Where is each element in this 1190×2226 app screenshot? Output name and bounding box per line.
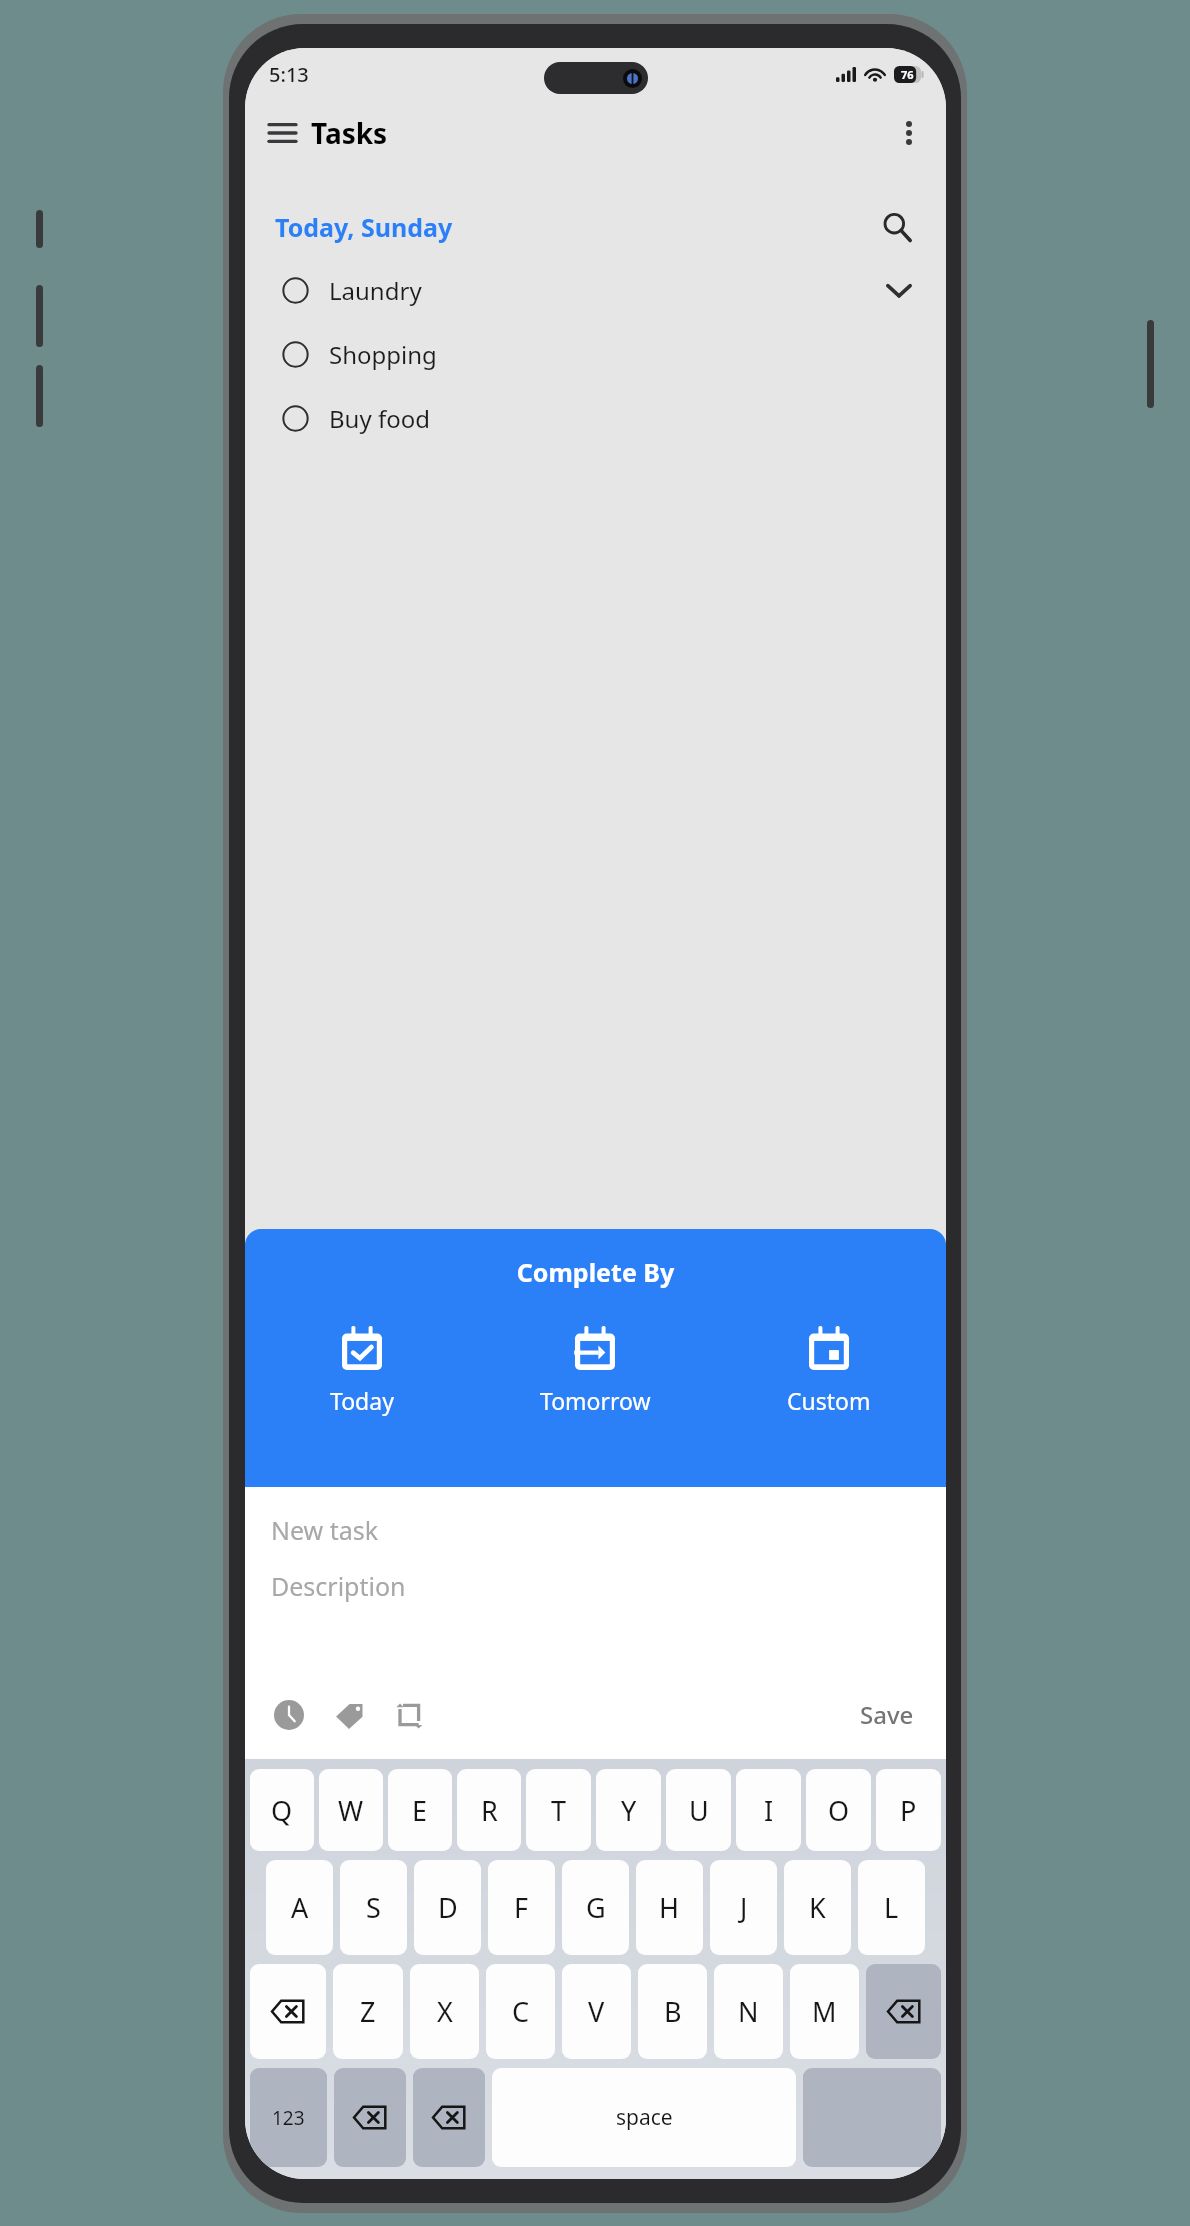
button[interactable]: I — [736, 1769, 801, 1851]
button[interactable]: Save — [854, 1690, 920, 1739]
staticText: Custom — [787, 1385, 871, 1416]
button[interactable]: Add label — [327, 1693, 371, 1737]
button[interactable]: 123 — [250, 2068, 327, 2167]
button[interactable]: J — [710, 1860, 777, 1955]
staticText: Q — [271, 1792, 293, 1829]
button[interactable]: W — [319, 1769, 383, 1851]
button[interactable]: A — [266, 1860, 333, 1955]
button[interactable]: Repeat — [387, 1693, 431, 1737]
staticText: P — [900, 1792, 917, 1829]
staticText: 123 — [272, 2105, 305, 2131]
button[interactable]: K — [784, 1860, 851, 1955]
staticText: 76 — [901, 67, 914, 82]
button[interactable]: Mark Shopping complete — [245, 322, 946, 386]
staticText: C — [512, 1993, 530, 2030]
staticText: B — [664, 1993, 682, 2030]
button[interactable]: D — [414, 1860, 481, 1955]
button[interactable]: O — [806, 1769, 871, 1851]
button[interactable]: L — [858, 1860, 925, 1955]
button[interactable]: Expand Laundry — [876, 267, 922, 313]
staticText: X — [437, 1993, 453, 2030]
staticText: Buy food — [329, 402, 430, 435]
staticText: N — [738, 1993, 759, 2030]
button[interactable]: Mark Laundry complete — [245, 258, 946, 322]
staticText: F — [514, 1889, 529, 1926]
button[interactable]: Mark Shopping complete — [275, 334, 315, 374]
button[interactable]: F — [488, 1860, 555, 1955]
button[interactable]: Return — [803, 2068, 941, 2167]
staticText: H — [659, 1889, 680, 1926]
staticText: T — [551, 1792, 567, 1829]
button[interactable]: M — [790, 1964, 859, 2059]
button[interactable]: Custom — [712, 1321, 946, 1420]
button[interactable]: Z — [333, 1964, 403, 2059]
button[interactable]: Q — [250, 1769, 314, 1851]
button[interactable]: S — [340, 1860, 407, 1955]
button[interactable]: Mark Laundry complete — [275, 270, 315, 310]
staticText: Complete By — [245, 1255, 946, 1289]
staticText: U — [689, 1792, 709, 1829]
staticText: Tomorrow — [540, 1385, 651, 1416]
button[interactable]: Backspace — [866, 1964, 941, 2059]
staticText: M — [812, 1993, 837, 2030]
button[interactable]: Tomorrow — [478, 1321, 712, 1420]
button[interactable]: space — [492, 2068, 796, 2167]
staticText: V — [588, 1993, 605, 2030]
staticText: Save — [860, 1698, 914, 1731]
button[interactable]: R — [457, 1769, 521, 1851]
staticText: Z — [360, 1993, 376, 2030]
staticText: Laundry — [329, 274, 422, 307]
staticText: I — [764, 1792, 774, 1829]
button[interactable]: Backspace — [334, 2068, 406, 2167]
button[interactable]: C — [486, 1964, 555, 2059]
button[interactable]: G — [562, 1860, 629, 1955]
staticText: K — [809, 1889, 826, 1926]
button[interactable]: Backspace — [413, 2068, 485, 2167]
button[interactable]: Today, Sunday — [275, 210, 453, 244]
staticText: D — [438, 1889, 458, 1926]
staticText: S — [366, 1889, 381, 1926]
staticText: L — [884, 1889, 899, 1926]
button[interactable]: Today — [245, 1321, 478, 1420]
staticText: Today — [330, 1385, 394, 1416]
button[interactable]: Set time — [267, 1693, 311, 1737]
staticText: space — [616, 2103, 673, 2132]
staticText: W — [338, 1792, 364, 1829]
button[interactable]: T — [526, 1769, 591, 1851]
button[interactable]: N — [714, 1964, 783, 2059]
staticText: R — [481, 1792, 498, 1829]
button[interactable]: U — [666, 1769, 731, 1851]
button[interactable]: Description — [271, 1569, 406, 1603]
staticText: Y — [621, 1792, 637, 1829]
button[interactable]: Open navigation menu — [257, 108, 307, 158]
staticText: Shopping — [329, 338, 437, 371]
staticText: Tasks — [311, 114, 388, 152]
button[interactable]: Y — [596, 1769, 661, 1851]
staticText: E — [412, 1792, 428, 1829]
staticText: O — [828, 1792, 850, 1829]
staticText: A — [291, 1889, 309, 1926]
button[interactable]: More options — [886, 110, 932, 156]
staticText: G — [586, 1889, 606, 1926]
button[interactable]: H — [636, 1860, 703, 1955]
button[interactable]: X — [410, 1964, 479, 2059]
button[interactable]: New task — [271, 1513, 379, 1547]
button[interactable]: Mark Buy food complete — [245, 386, 946, 450]
button[interactable]: B — [638, 1964, 707, 2059]
button[interactable]: E — [388, 1769, 452, 1851]
button[interactable]: P — [876, 1769, 941, 1851]
staticText: J — [740, 1889, 748, 1926]
button[interactable]: Mark Buy food complete — [275, 398, 315, 438]
button[interactable]: Backspace — [250, 1964, 326, 2059]
staticText: 5:13 — [269, 61, 309, 88]
button[interactable]: Search — [872, 202, 922, 252]
button[interactable]: V — [562, 1964, 631, 2059]
